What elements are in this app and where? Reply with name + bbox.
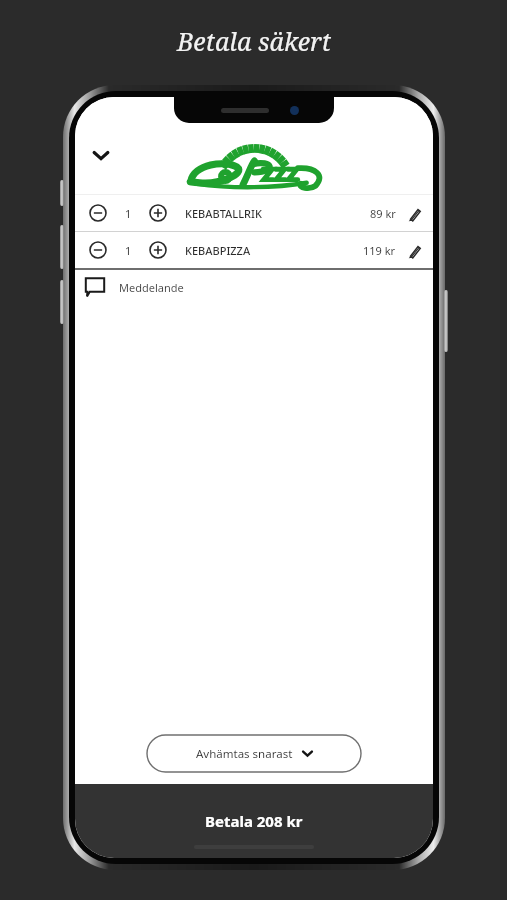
staticText: 1 [125,206,132,221]
button[interactable]: Stäng [81,135,121,175]
button[interactable]: Meddelande [75,270,433,304]
button[interactable]: Öka antal [145,200,171,226]
button[interactable]: Redigera [403,203,423,223]
button[interactable]: Minska antal [85,237,111,263]
button[interactable]: Betala 208 kr [75,784,433,858]
staticText: KEBABPIZZA [185,243,251,258]
button[interactable]: Minska antal [85,200,111,226]
staticText: 1 [125,243,132,258]
staticText: 89 kr [370,206,396,221]
staticText: KEBABTALLRIK [185,206,262,221]
staticText: Meddelande [119,280,184,295]
button[interactable]: Redigera [403,240,423,260]
button[interactable]: Avhämtas snarast [147,735,361,772]
staticText: Avhämtas snarast [196,746,293,762]
staticText: 119 kr [363,243,396,258]
button[interactable]: Öka antal [145,237,171,263]
staticText: Betala 208 kr [205,811,303,831]
staticText: Betala säkert [177,24,331,58]
button[interactable]: Minska antal [75,195,433,231]
button[interactable]: Minska antal [75,232,433,268]
